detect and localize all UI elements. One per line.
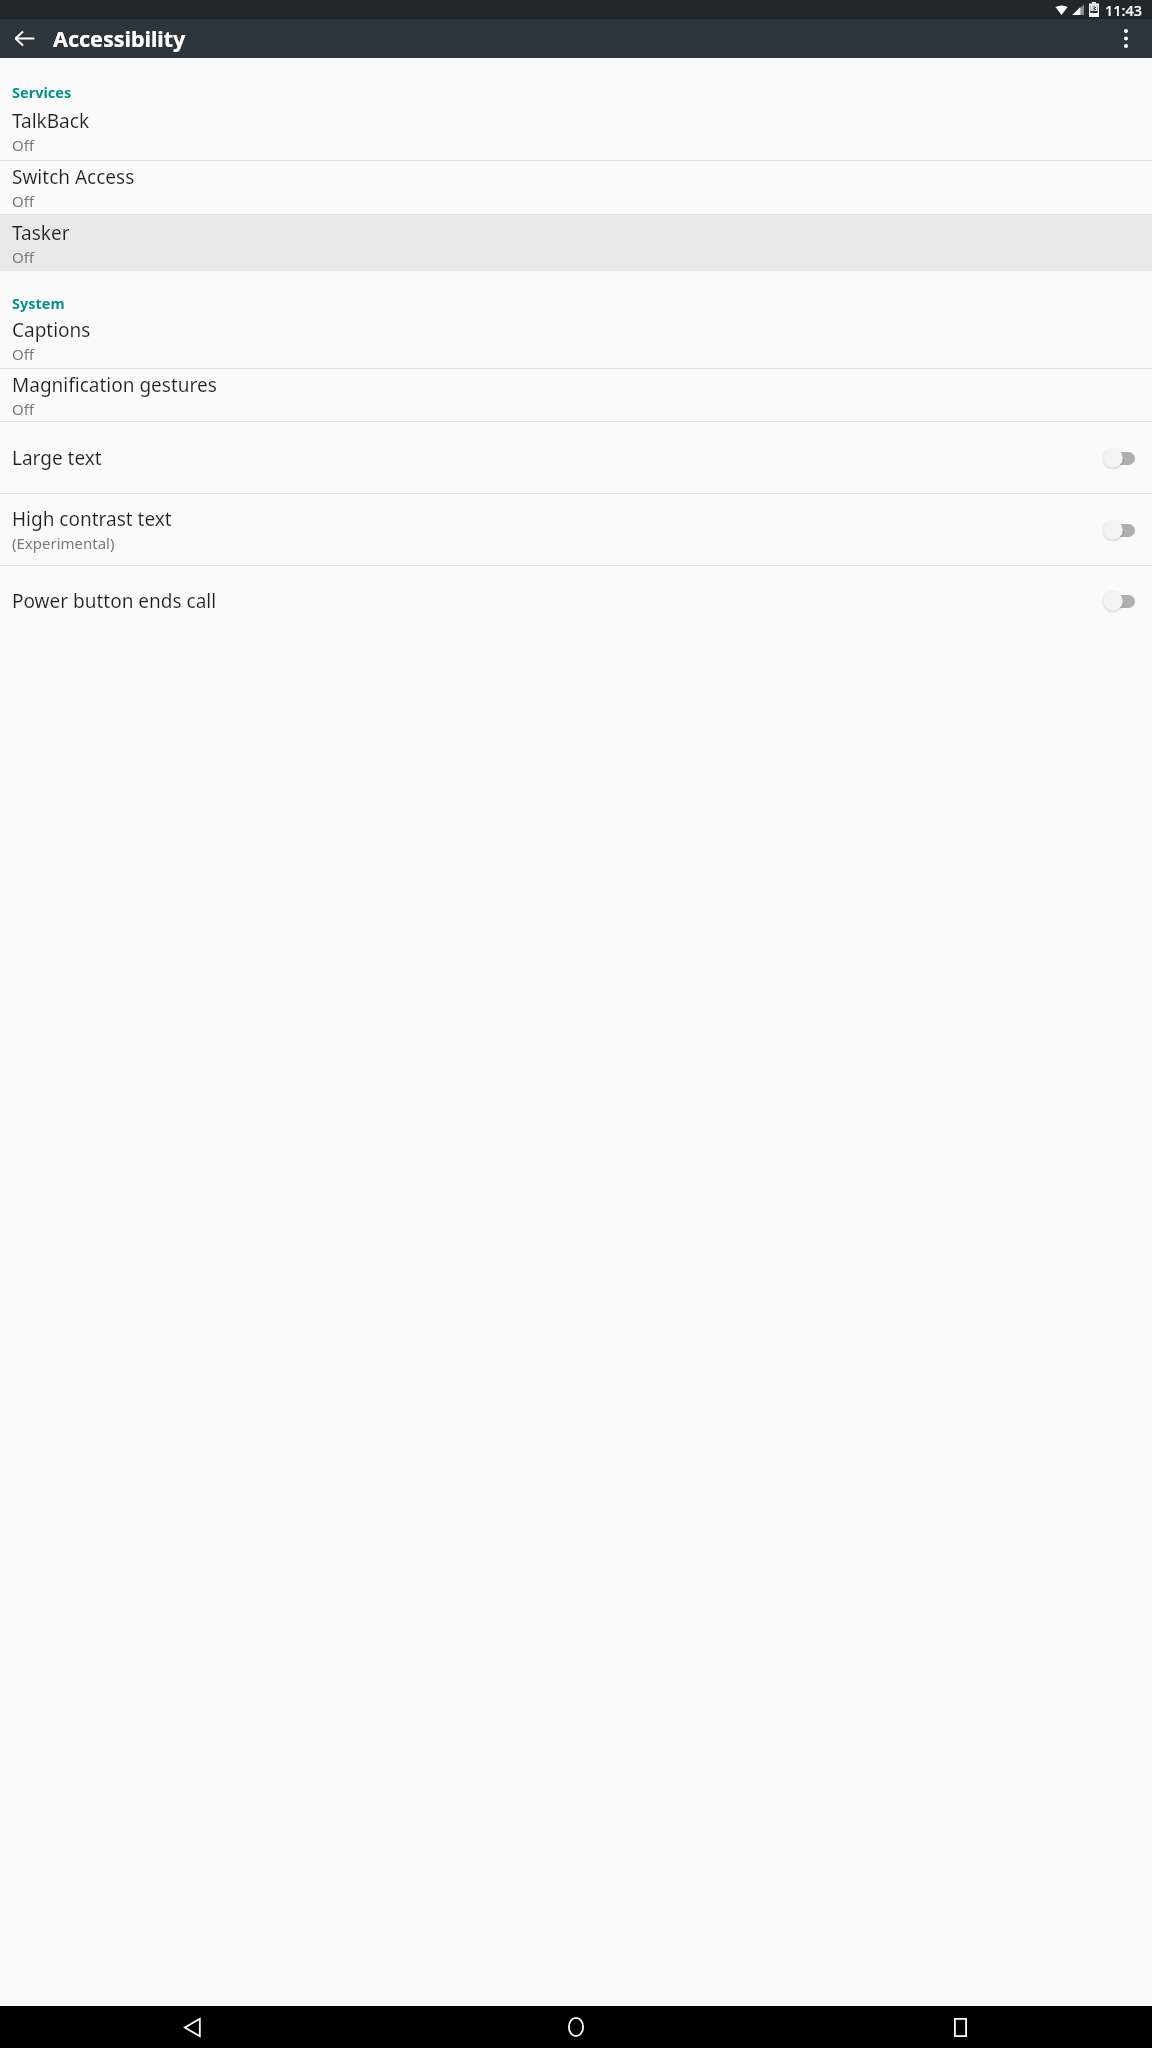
button[interactable]: Tasker bbox=[0, 215, 1152, 271]
staticText: (Experimental) bbox=[12, 533, 115, 553]
staticText: High contrast text bbox=[12, 506, 172, 532]
button[interactable]: Recent apps bbox=[768, 2006, 1152, 2048]
button[interactable]: Off bbox=[1103, 446, 1136, 470]
staticText: Large text bbox=[12, 445, 102, 471]
button[interactable]: Magnification gestures bbox=[0, 369, 1152, 421]
button[interactable]: High contrast text bbox=[0, 494, 1152, 565]
staticText: Accessibility bbox=[53, 24, 186, 53]
staticText: Off bbox=[12, 344, 35, 364]
button[interactable]: Switch Access bbox=[0, 161, 1152, 214]
staticText: Captions bbox=[12, 317, 91, 343]
button[interactable]: Off bbox=[1103, 518, 1136, 542]
staticText: 11:43 bbox=[1105, 0, 1143, 19]
staticText: Switch Access bbox=[12, 164, 135, 190]
staticText: System bbox=[12, 293, 65, 313]
staticText: Off bbox=[12, 247, 35, 267]
button[interactable]: More options bbox=[1104, 19, 1148, 58]
button[interactable]: Off bbox=[1103, 589, 1136, 613]
staticText: 83 bbox=[1090, 4, 1098, 13]
staticText: Off bbox=[12, 191, 35, 211]
button[interactable]: Navigate up bbox=[2, 19, 46, 58]
button[interactable]: Power button ends call bbox=[0, 566, 1152, 636]
button[interactable]: Large text bbox=[0, 422, 1152, 493]
button[interactable]: Home bbox=[384, 2006, 768, 2048]
button[interactable]: TalkBack bbox=[0, 102, 1152, 160]
staticText: Services bbox=[12, 82, 72, 102]
staticText: Off bbox=[12, 399, 35, 419]
staticText: Magnification gestures bbox=[12, 372, 217, 398]
button[interactable]: Captions bbox=[0, 313, 1152, 368]
staticText: Power button ends call bbox=[12, 588, 217, 614]
button[interactable]: Back bbox=[0, 2006, 384, 2048]
staticText: Tasker bbox=[12, 220, 70, 246]
staticText: Off bbox=[12, 135, 35, 155]
staticText: TalkBack bbox=[12, 108, 90, 134]
